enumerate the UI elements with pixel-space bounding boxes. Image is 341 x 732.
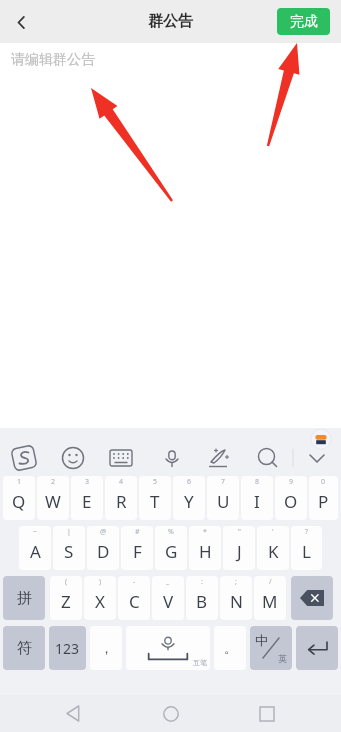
staticText: B [196,590,208,613]
button[interactable]: 9 [275,476,307,520]
staticText: : [201,577,203,587]
button[interactable]: # [121,526,153,570]
button[interactable]: Keyboard [105,443,137,473]
staticText: @ [100,527,107,537]
staticText: _ [166,577,170,587]
staticText: 中 [255,632,268,648]
staticText: 7 [221,477,226,487]
staticText: / [269,577,272,587]
button[interactable]: 3 [71,476,103,520]
staticText: 3 [85,477,90,487]
button[interactable]: ' [257,526,289,570]
staticText: 123 [55,639,80,658]
staticText: 5 [153,477,158,487]
staticText: 拼 [17,589,32,608]
button[interactable]: Back [52,695,96,732]
staticText: Y [184,490,194,513]
staticText: 。 [224,640,237,656]
staticText: R [116,490,127,513]
button[interactable]: | [53,526,85,570]
staticText: F [133,540,142,563]
button[interactable]: % [155,526,187,570]
button[interactable]: Emoji [57,443,89,473]
staticText: M [262,590,278,613]
button[interactable]: 拼 [3,576,45,620]
button[interactable]: 5 [139,476,171,520]
staticText: S [64,540,74,563]
button[interactable]: _ [152,576,184,620]
button[interactable]: 8 [241,476,273,520]
button[interactable]: ) [84,576,116,620]
staticText: 群公告 [148,12,193,31]
button[interactable]: 7 [207,476,239,520]
button[interactable]: Search [252,443,284,473]
button[interactable]: @ [87,526,119,570]
button[interactable]: / [254,576,286,620]
staticText: - [133,577,136,587]
button[interactable]: ~ [19,526,51,570]
staticText: H [199,540,212,563]
staticText: D [97,540,110,563]
button[interactable]: " [223,526,255,570]
button[interactable]: 符 [3,626,45,670]
button[interactable]: 完成 [277,8,330,35]
staticText: E [82,490,92,513]
staticText: | [67,527,71,537]
staticText: ， [100,640,113,656]
button[interactable]: Hide keyboard [301,443,333,473]
button[interactable]: 0 [309,476,338,520]
button[interactable]: Avatar [311,429,331,449]
staticText: T [150,490,160,513]
button[interactable]: 6 [173,476,205,520]
staticText: J [237,540,242,563]
button[interactable]: Space [126,626,210,670]
button[interactable]: Chinese English toggle [250,626,292,670]
staticText: 英 [278,653,287,664]
staticText: 完成 [290,13,318,31]
staticText: 0 [321,477,326,487]
button[interactable]: * [189,526,221,570]
staticText: K [268,540,279,563]
button[interactable]: Recents [245,695,289,732]
button[interactable]: 2 [37,476,69,520]
button[interactable]: Home [149,695,193,732]
button[interactable]: ? [291,526,322,570]
staticText: U [217,490,230,513]
staticText: 9 [289,477,294,487]
button[interactable]: 1 [3,476,35,520]
staticText: ' [272,527,274,537]
button[interactable]: ， [90,626,122,670]
staticText: V [163,590,174,613]
staticText: P [318,490,329,513]
button[interactable]: - [118,576,150,620]
staticText: * [203,527,207,537]
button[interactable]: 123 [49,626,86,670]
button[interactable]: Voice [156,443,188,473]
button[interactable]: ( [50,576,82,620]
staticText: 1 [17,477,22,487]
staticText: N [230,590,243,613]
staticText: ; [235,577,237,587]
button[interactable]: 4 [105,476,137,520]
staticText: % [168,527,174,537]
staticText: W [45,490,61,513]
staticText: 8 [255,477,260,487]
staticText: # [135,527,140,537]
staticText: 符 [17,639,32,658]
staticText: 请编辑群公告 [11,51,95,69]
button[interactable]: Backspace [291,576,333,620]
button[interactable]: Handwriting [203,443,235,473]
button[interactable]: 。 [214,626,246,670]
button[interactable]: Sogou [8,443,40,473]
button[interactable]: Back [0,1,42,43]
staticText: X [95,590,105,613]
staticText: ~ [33,527,38,537]
staticText: Z [61,590,71,613]
staticText: " [238,527,241,537]
staticText: ) [99,577,102,587]
staticText: 2 [51,477,56,487]
button[interactable]: Enter [296,626,338,670]
staticText: ( [65,577,68,587]
button[interactable]: : [186,576,218,620]
button[interactable]: ; [220,576,252,620]
